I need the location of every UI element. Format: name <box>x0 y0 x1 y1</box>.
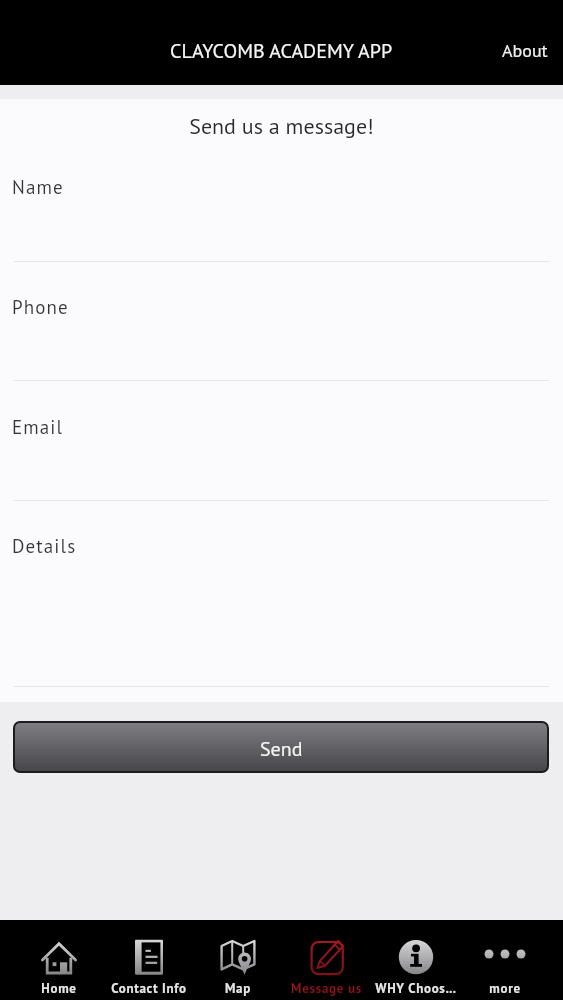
staticText: Phone <box>12 295 69 320</box>
staticText: Contact Info <box>111 980 187 997</box>
staticText: WHY Choos… <box>375 980 457 997</box>
staticText: Message us <box>291 980 362 997</box>
button[interactable]: Message us <box>282 920 371 1000</box>
staticText: Send <box>260 736 303 762</box>
staticText: more <box>489 980 521 997</box>
staticText: About <box>502 39 548 62</box>
button[interactable]: Map <box>193 920 282 1000</box>
staticText: Details <box>12 534 77 559</box>
button[interactable]: About <box>488 29 562 72</box>
staticText: Send us a message! <box>0 112 563 140</box>
button[interactable]: More <box>460 920 549 1000</box>
button[interactable]: Send <box>15 723 547 771</box>
staticText: Email <box>12 415 64 440</box>
staticText: Name <box>12 175 64 200</box>
button[interactable]: Why Choose us <box>371 920 460 1000</box>
button[interactable]: Home <box>14 920 104 1000</box>
staticText: CLAYCOMB ACADEMY APP <box>170 38 393 64</box>
button[interactable]: Contact Info <box>104 920 193 1000</box>
staticText: Home <box>41 980 77 997</box>
staticText: Map <box>225 980 251 997</box>
